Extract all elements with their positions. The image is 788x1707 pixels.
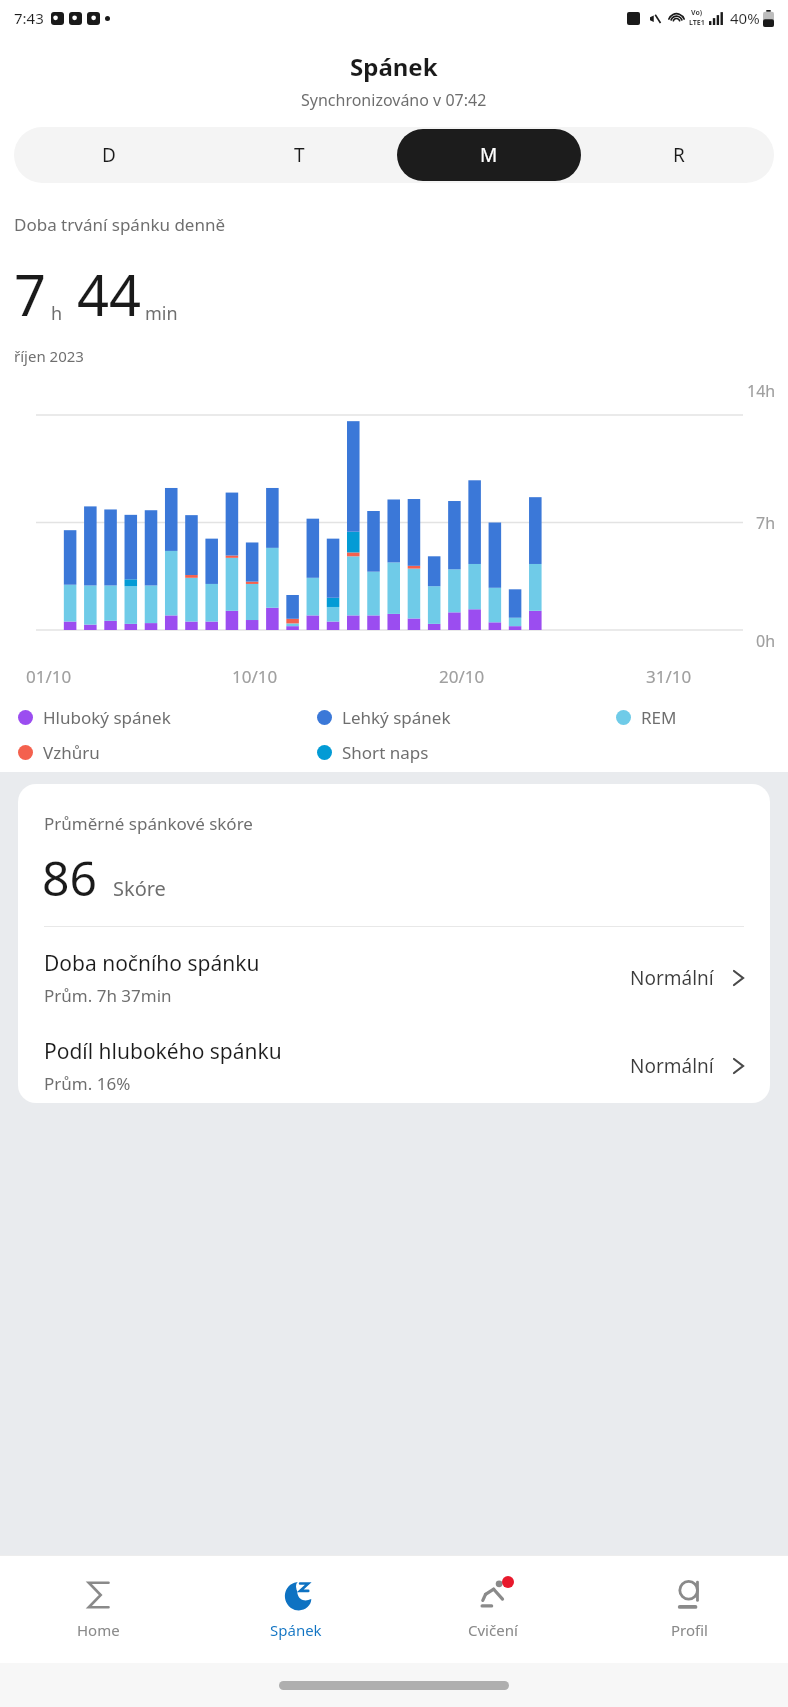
staticText: h [51,301,63,326]
staticText: 40% [730,8,760,28]
staticText: T [294,142,305,168]
button[interactable]: Podíl hlubokého spánku [18,1015,770,1103]
staticText: 10/10 [232,665,278,688]
staticText: 7h [756,512,776,534]
staticText: D [102,142,116,168]
staticText: Podíl hlubokého spánku [44,1037,282,1066]
button[interactable]: M [397,129,581,181]
staticText: Doba nočního spánku [44,949,260,978]
staticText: říjen 2023 [14,346,84,366]
button[interactable]: Cvičení [394,1555,591,1663]
staticText: Cvičení [468,1620,518,1640]
staticText: Vo) [691,8,703,18]
staticText: 20/10 [439,665,485,688]
staticText: 7 [14,256,47,332]
staticText: Průměrné spánkové skóre [44,812,253,835]
button[interactable]: Home [0,1555,197,1663]
staticText: 31/10 [646,665,692,688]
button[interactable]: R [584,127,774,183]
staticText: 7:43 [14,8,44,28]
staticText: Lehký spánek [342,706,451,729]
staticText: Spánek [350,50,438,83]
button[interactable]: D [14,127,204,183]
staticText: Profil [671,1620,708,1640]
staticText: 0h [756,630,776,652]
staticText: REM [641,706,677,729]
staticText: Hluboký spánek [43,706,171,729]
staticText: Spánek [270,1620,322,1640]
button[interactable]: Profil [591,1555,788,1663]
button[interactable]: T [204,127,394,183]
button[interactable]: Doba nočního spánku [18,927,770,1015]
staticText: Prům. 16% [44,1072,131,1095]
staticText: 44 [77,256,142,332]
staticText: Prům. 7h 37min [44,984,172,1007]
staticText: Skóre [113,875,166,902]
staticText: Doba trvání spánku denně [14,213,226,236]
staticText: Home [77,1620,120,1640]
staticText: 86 [42,845,97,910]
staticText: Normální [630,1053,714,1079]
staticText: Normální [630,965,714,991]
staticText: 01/10 [26,665,72,688]
staticText: R [673,142,685,168]
staticText: Vzhůru [43,741,100,764]
staticText: LTE1 [689,18,705,28]
staticText: Short naps [342,741,429,764]
button[interactable]: Spánek [197,1555,394,1663]
staticText: M [480,142,498,168]
staticText: Synchronizováno v 07:42 [301,89,487,111]
staticText: min [145,301,178,326]
staticText: 14h [747,380,776,402]
